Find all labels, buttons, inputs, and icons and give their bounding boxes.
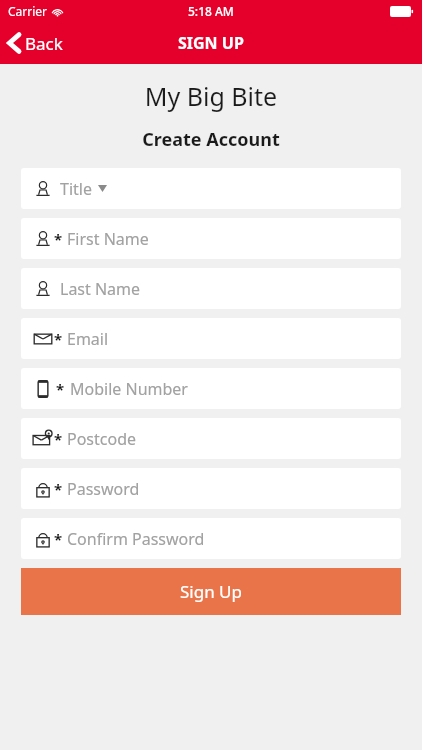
- staticText: *: [54, 229, 63, 249]
- button[interactable]: *: [21, 318, 401, 359]
- button[interactable]: Last Name: [21, 268, 401, 309]
- staticText: Last Name: [60, 278, 141, 300]
- staticText: *: [54, 479, 63, 499]
- staticText: Back: [25, 32, 63, 55]
- staticText: Confirm Password: [67, 528, 205, 550]
- staticText: Postcode: [67, 428, 137, 450]
- staticText: *: [56, 379, 65, 399]
- button[interactable]: Title: [21, 168, 401, 209]
- staticText: *: [54, 429, 63, 449]
- button[interactable]: *: [21, 368, 401, 409]
- staticText: First Name: [67, 228, 149, 250]
- staticText: Create Account: [0, 127, 422, 152]
- staticText: Sign Up: [180, 580, 242, 603]
- button[interactable]: *: [21, 518, 401, 559]
- staticText: Password: [67, 478, 140, 500]
- staticText: Carrier: [8, 3, 48, 19]
- staticText: 5:18 AM: [188, 3, 234, 19]
- staticText: SIGN UP: [178, 32, 244, 54]
- staticText: *: [54, 529, 63, 549]
- button[interactable]: *: [21, 418, 401, 459]
- button[interactable]: Sign Up: [21, 568, 401, 615]
- staticText: *: [54, 329, 63, 349]
- button[interactable]: *: [21, 218, 401, 259]
- button[interactable]: *: [21, 468, 401, 509]
- staticText: Mobile Number: [70, 378, 188, 400]
- staticText: My Big Bite: [0, 79, 422, 113]
- button[interactable]: Back: [0, 22, 73, 64]
- staticText: Email: [67, 328, 109, 350]
- staticText: Title: [60, 178, 92, 200]
